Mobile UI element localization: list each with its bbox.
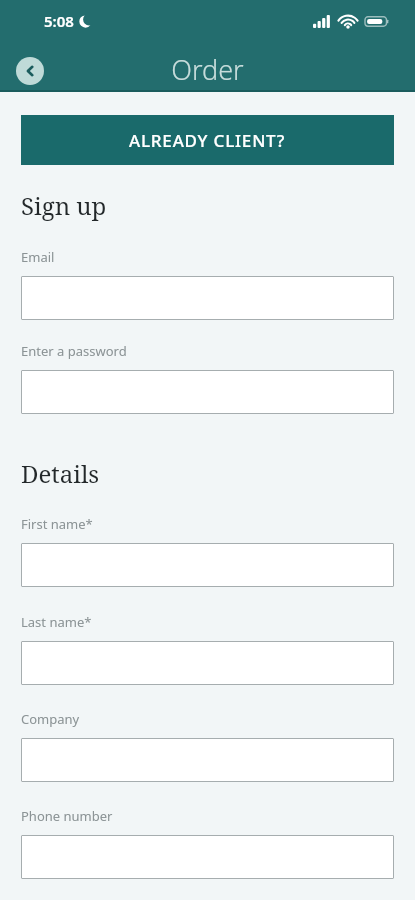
staticText: ALREADY CLIENT?: [129, 129, 286, 152]
button[interactable]: Phone number: [21, 835, 394, 879]
button[interactable]: Last name*: [21, 641, 394, 685]
button[interactable]: Email: [21, 276, 394, 320]
staticText: 5:08: [44, 11, 74, 31]
button[interactable]: Back: [16, 57, 44, 85]
staticText: Sign up: [21, 189, 107, 222]
staticText: First name*: [21, 515, 93, 533]
button[interactable]: Enter a password: [21, 370, 394, 414]
button[interactable]: Company: [21, 738, 394, 782]
button[interactable]: ALREADY CLIENT?: [21, 115, 394, 165]
staticText: Company: [21, 710, 80, 728]
staticText: Details: [21, 457, 100, 490]
staticText: Last name*: [21, 613, 92, 631]
staticText: Phone number: [21, 807, 113, 825]
staticText: Email: [21, 248, 55, 266]
button[interactable]: First name*: [21, 543, 394, 587]
staticText: Order: [0, 51, 415, 88]
staticText: Enter a password: [21, 342, 127, 360]
